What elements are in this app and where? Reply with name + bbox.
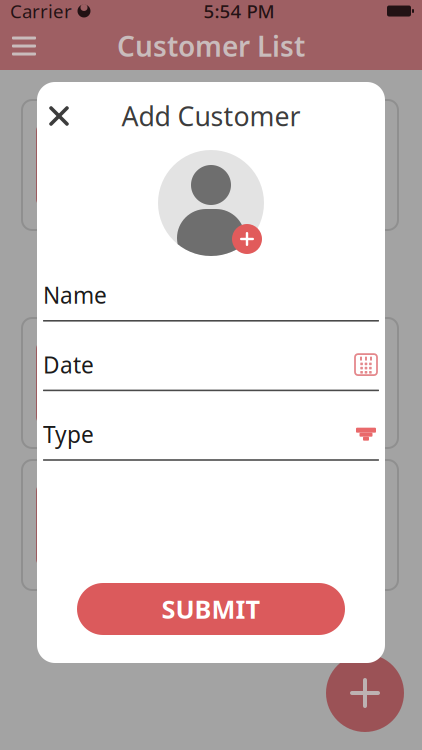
staticText: Add Customer	[121, 98, 300, 134]
staticText: Type	[43, 419, 94, 449]
button[interactable]: Select type	[353, 421, 379, 447]
button[interactable]: SUBMIT	[77, 583, 345, 635]
staticText: 5:54 PM	[203, 0, 274, 23]
button[interactable]: Menu	[2, 24, 46, 68]
staticText: Date	[43, 349, 94, 380]
button[interactable]: Pick date	[353, 352, 379, 378]
staticText: Customer List	[117, 27, 305, 65]
button[interactable]: Close	[37, 94, 81, 138]
staticText: SUBMIT	[161, 592, 260, 626]
staticText: Carrier	[10, 0, 72, 23]
button[interactable]: Add	[326, 654, 404, 732]
button[interactable]: Add photo	[158, 150, 264, 256]
staticText: Name	[43, 280, 107, 310]
